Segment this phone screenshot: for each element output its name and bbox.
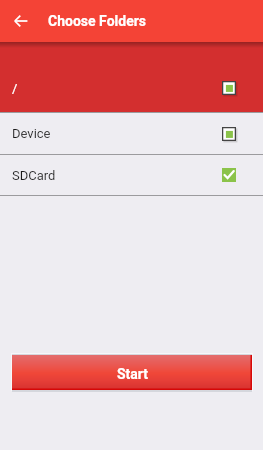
staticText: Device <box>12 126 51 141</box>
staticText: / <box>12 81 18 96</box>
button[interactable]: SDCard <box>0 155 263 195</box>
staticText: SDCard <box>12 168 56 183</box>
staticText: Start <box>117 366 149 382</box>
staticText: Choose Folders <box>48 13 147 29</box>
button[interactable]: Start <box>10 352 254 394</box>
button[interactable]: Back <box>7 7 35 35</box>
button[interactable]: Device <box>0 113 263 154</box>
button[interactable]: / <box>0 42 263 112</box>
